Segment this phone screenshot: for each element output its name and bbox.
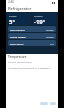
- staticText: -19°: [34, 18, 46, 24]
- staticText: Freeze: [46, 35, 54, 38]
- staticText: Door alarm: [10, 42, 24, 45]
- staticText: Fast Cooling: [10, 28, 25, 31]
- staticText: The ideal temperature is 3 degrees C: [8, 66, 52, 69]
- staticText: Temperature: [8, 55, 27, 59]
- staticText: 5°: [9, 18, 15, 24]
- staticText: Freezer: [34, 14, 43, 17]
- staticText: On: [50, 42, 54, 45]
- button[interactable]: Freezer: [33, 13, 56, 25]
- staticText: Refrigerator: [8, 6, 32, 11]
- button[interactable]: Power Freeze: [8, 33, 56, 39]
- staticText: ▮▮: [52, 1, 56, 4]
- staticText: Fridge: [46, 28, 54, 31]
- staticText: 2:46: [8, 0, 14, 4]
- button[interactable]: Fast Cooling: [8, 26, 56, 32]
- button[interactable]: [40, 102, 48, 105]
- button[interactable]: Fridge: [8, 13, 31, 25]
- staticText: Fridge: [9, 14, 17, 17]
- button[interactable]: Door alarm: [8, 40, 56, 46]
- button[interactable]: [50, 102, 56, 105]
- staticText: Power Freeze: [10, 35, 26, 38]
- staticText: Set the temperature: [8, 60, 32, 63]
